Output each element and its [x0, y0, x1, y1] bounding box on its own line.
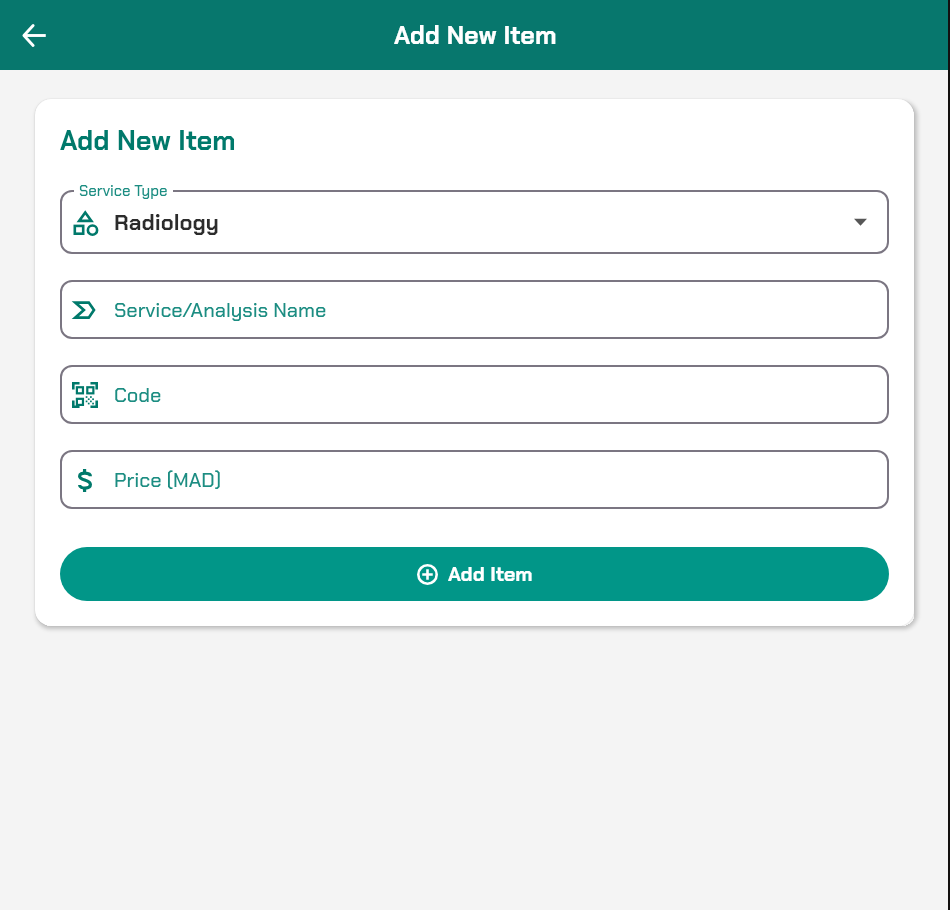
- button[interactable]: [60, 280, 889, 339]
- staticText: Add New Item: [394, 19, 557, 51]
- staticText: Radiology: [114, 208, 219, 237]
- button[interactable]: Back: [10, 11, 58, 59]
- button[interactable]: Add Item: [60, 547, 889, 601]
- button[interactable]: [60, 190, 889, 254]
- button[interactable]: [60, 450, 889, 509]
- staticText: Service/Analysis Name: [114, 297, 327, 323]
- staticText: Add Item: [448, 561, 533, 587]
- staticText: Price (MAD): [114, 467, 222, 493]
- staticText: Add New Item: [60, 123, 236, 158]
- staticText: Service Type: [79, 181, 168, 201]
- staticText: Code: [114, 382, 162, 408]
- button[interactable]: [60, 365, 889, 424]
